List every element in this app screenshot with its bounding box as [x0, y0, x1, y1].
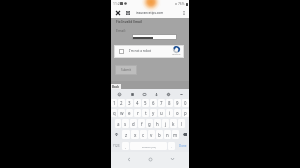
button[interactable]: Recents	[168, 155, 176, 163]
button[interactable]: 0	[182, 99, 189, 107]
button[interactable]: Close	[114, 9, 122, 17]
button[interactable]: n	[164, 130, 171, 139]
button[interactable]: 7	[158, 99, 165, 107]
staticText: y	[152, 110, 155, 116]
button[interactable]	[132, 34, 177, 40]
button[interactable]: More options	[180, 9, 188, 17]
button[interactable]: Home	[146, 155, 154, 163]
button[interactable]: x	[131, 130, 139, 139]
button[interactable]: i	[166, 109, 173, 117]
button[interactable]: Back	[111, 84, 121, 89]
button[interactable]: .	[168, 142, 175, 150]
button[interactable]: o	[174, 109, 181, 117]
button[interactable]: p	[182, 109, 189, 117]
button[interactable]: 2	[118, 99, 125, 107]
button[interactable]: z	[122, 130, 130, 139]
button[interactable]: c	[140, 130, 147, 139]
button[interactable]: 1	[111, 99, 117, 107]
staticText: n	[166, 132, 169, 138]
staticText: ?123	[113, 144, 120, 148]
staticText: j	[165, 121, 167, 127]
staticText: d	[132, 121, 135, 127]
staticText: 11:20	[113, 1, 122, 6]
staticText: v	[150, 132, 153, 138]
staticText: s	[124, 121, 127, 127]
button[interactable]: I'm not a robot checkbox	[119, 49, 124, 54]
staticText: 8	[168, 100, 171, 106]
button[interactable]: v	[148, 130, 155, 139]
button[interactable]: Emoji	[115, 90, 123, 98]
staticText: h	[156, 121, 159, 127]
button[interactable]: Bookmark	[124, 9, 132, 17]
button[interactable]: d	[130, 119, 137, 128]
button[interactable]: Settings	[164, 90, 172, 98]
staticText: q	[113, 110, 116, 116]
staticText: c	[142, 132, 145, 138]
button[interactable]: Backspace	[180, 129, 189, 140]
staticText: Fix Invalid Email	[116, 20, 142, 24]
button[interactable]: 6	[150, 99, 157, 107]
button[interactable]: m	[172, 130, 179, 139]
button[interactable]: Shift	[111, 129, 121, 140]
button[interactable]: w	[118, 109, 125, 117]
button[interactable]: GIF	[140, 90, 148, 98]
button[interactable]: Voice input	[152, 90, 160, 98]
staticText: 3	[128, 100, 131, 106]
button[interactable]: Symbols	[111, 140, 121, 152]
button[interactable]: f	[138, 119, 145, 128]
button[interactable]: 9	[174, 99, 181, 107]
button[interactable]: s	[122, 119, 129, 128]
button[interactable]: 5	[142, 99, 149, 107]
button[interactable]: Back	[125, 155, 133, 163]
button[interactable]: j	[162, 119, 169, 128]
staticText: 7	[160, 100, 163, 106]
staticText: m	[173, 132, 178, 138]
button[interactable]: l	[178, 119, 185, 128]
button[interactable]: b	[156, 130, 163, 139]
button[interactable]: y	[150, 109, 157, 117]
staticText: Privacy - Terms	[170, 56, 183, 58]
staticText: 0	[184, 100, 187, 106]
staticText: r	[137, 110, 139, 116]
staticText: 2	[120, 100, 123, 106]
staticText: u	[160, 110, 163, 116]
staticText: insurancetips.com	[136, 11, 164, 15]
staticText: Back	[112, 85, 120, 89]
staticText: reCAPTCHA	[172, 53, 181, 55]
button[interactable]: Submit	[115, 65, 137, 75]
button[interactable]: Done	[176, 140, 189, 152]
staticText: 4	[136, 100, 139, 106]
staticText: e	[128, 110, 131, 116]
staticText: 1	[113, 100, 116, 106]
button[interactable]: h	[154, 119, 161, 128]
button[interactable]: e	[126, 109, 133, 117]
staticText: 9	[176, 100, 179, 106]
staticText: 76%	[178, 2, 185, 6]
button[interactable]: 8	[166, 99, 173, 107]
button[interactable]: g	[146, 119, 153, 128]
button[interactable]: a	[115, 119, 121, 128]
button[interactable]: Space	[130, 142, 167, 150]
button[interactable]: ,	[122, 142, 129, 150]
staticText: p	[184, 110, 187, 116]
staticText: w	[120, 110, 124, 116]
button[interactable]: t	[142, 109, 149, 117]
staticText: x	[134, 132, 137, 138]
button[interactable]: 4	[134, 99, 141, 107]
staticText: ,	[125, 144, 126, 149]
button[interactable]: q	[111, 109, 117, 117]
button[interactable]: r	[134, 109, 141, 117]
staticText: Done	[179, 144, 187, 148]
button[interactable]: 3	[126, 99, 133, 107]
button[interactable]: k	[170, 119, 177, 128]
staticText: Submit	[121, 68, 132, 72]
button[interactable]: Stickers	[128, 90, 136, 98]
staticText: k	[172, 121, 175, 127]
staticText: I'm not a robot	[129, 49, 151, 53]
staticText: a	[117, 121, 120, 127]
button[interactable]: More	[177, 90, 185, 98]
staticText: t	[145, 110, 147, 116]
staticText: 5	[144, 100, 147, 106]
button[interactable]: u	[158, 109, 165, 117]
staticText: f	[141, 121, 143, 127]
